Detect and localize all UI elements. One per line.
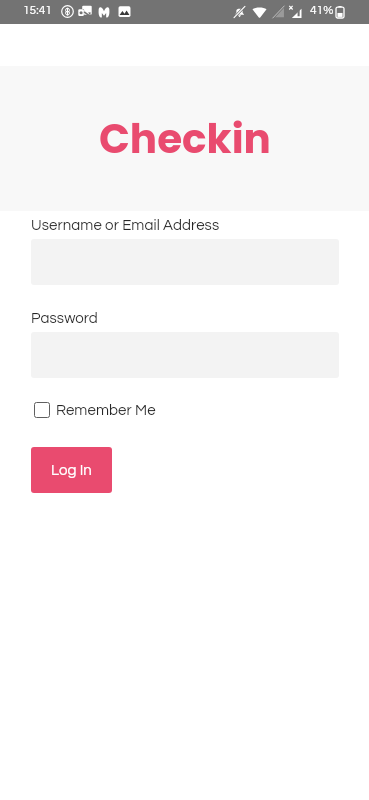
staticText: Username or Email Address [31,218,220,233]
staticText: Checkin [99,110,271,167]
button[interactable]: Log In [31,447,112,493]
staticText: Log In [51,463,92,478]
staticText: Password [31,311,98,326]
button[interactable]: Remember Me [31,398,156,422]
staticText: Remember Me [56,403,156,418]
staticText: 41% [310,4,334,16]
staticText: 15:41 [23,4,52,16]
